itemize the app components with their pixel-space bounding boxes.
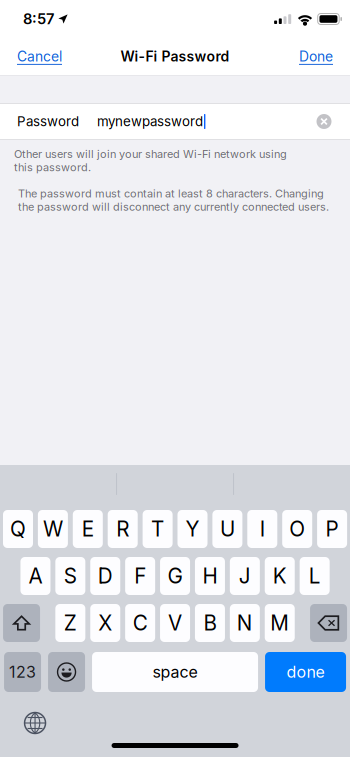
staticText: Password <box>17 113 79 129</box>
staticText: B <box>203 610 216 635</box>
button[interactable]: space <box>92 652 258 692</box>
staticText: C <box>133 610 148 635</box>
button[interactable]: P <box>317 510 347 548</box>
staticText: Cancel <box>17 48 62 65</box>
button[interactable]: Q <box>3 510 33 548</box>
button[interactable]: V <box>160 604 190 642</box>
button[interactable]: O <box>282 510 312 548</box>
button[interactable]: B <box>195 604 225 642</box>
staticText: T <box>151 516 164 541</box>
button[interactable]: I <box>247 510 277 548</box>
staticText: D <box>98 563 113 588</box>
button[interactable]: Shift <box>3 604 40 642</box>
button[interactable]: X <box>90 604 120 642</box>
button[interactable]: Z <box>55 604 85 642</box>
button[interactable]: L <box>300 557 330 595</box>
button[interactable]: Emoji <box>48 652 85 692</box>
button[interactable]: D <box>90 557 120 595</box>
staticText: X <box>98 610 112 635</box>
staticText: V <box>168 610 182 635</box>
button[interactable]: H <box>195 557 225 595</box>
button[interactable]: W <box>38 510 68 548</box>
staticText: Wi-Fi Password <box>120 48 229 65</box>
staticText: J <box>239 563 251 588</box>
staticText: I <box>260 516 265 541</box>
staticText: O <box>289 516 305 541</box>
button[interactable]: Y <box>177 510 207 548</box>
staticText: Y <box>185 516 199 541</box>
button[interactable]: U <box>212 510 242 548</box>
button[interactable]: S <box>55 557 85 595</box>
button[interactable]: Clear text <box>312 109 336 133</box>
staticText: Z <box>64 610 77 635</box>
button[interactable]: C <box>125 604 155 642</box>
button[interactable]: R <box>108 510 138 548</box>
button[interactable]: G <box>160 557 190 595</box>
staticText: R <box>116 516 129 541</box>
staticText: L <box>309 563 321 588</box>
staticText: Done <box>299 48 333 65</box>
staticText: 123 <box>9 662 36 682</box>
button[interactable]: M <box>265 604 295 642</box>
button[interactable]: K <box>265 557 295 595</box>
staticText: mynewpassword <box>97 113 203 129</box>
button[interactable]: Done <box>299 48 333 65</box>
staticText: F <box>134 563 146 588</box>
staticText: K <box>273 563 287 588</box>
button[interactable]: Delete <box>310 604 347 642</box>
staticText: G <box>168 563 183 588</box>
button[interactable]: done <box>265 652 346 692</box>
button[interactable]: A <box>20 557 50 595</box>
staticText: done <box>287 662 325 682</box>
button[interactable]: T <box>143 510 173 548</box>
staticText: space <box>153 662 198 682</box>
staticText: Other users will join your shared Wi-Fi … <box>14 147 287 174</box>
staticText: P <box>326 516 339 541</box>
button[interactable]: E <box>73 510 103 548</box>
staticText: S <box>64 563 77 588</box>
button[interactable]: F <box>125 557 155 595</box>
staticText: U <box>220 516 235 541</box>
staticText: 8:57 <box>23 10 54 28</box>
button[interactable]: 123 <box>4 652 41 692</box>
staticText: A <box>28 563 42 588</box>
staticText: Q <box>10 516 26 541</box>
staticText: M <box>270 610 289 635</box>
staticText: W <box>43 516 63 541</box>
button[interactable]: N <box>230 604 260 642</box>
staticText: N <box>237 610 253 635</box>
button[interactable]: Next keyboard <box>14 707 56 739</box>
staticText: E <box>82 516 94 541</box>
staticText: H <box>202 563 217 588</box>
staticText: The password must contain at least 8 cha… <box>18 187 329 213</box>
button[interactable]: J <box>230 557 260 595</box>
button[interactable]: Cancel <box>17 48 62 65</box>
